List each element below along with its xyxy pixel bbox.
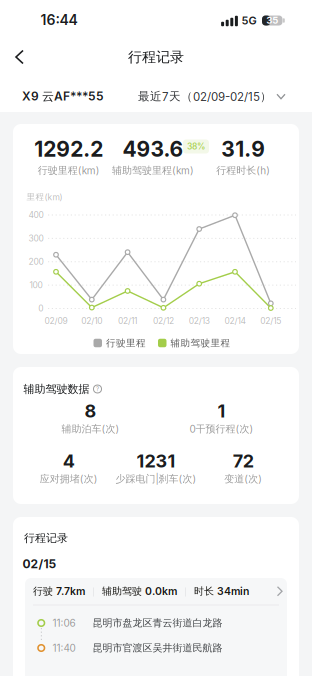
staticText: 02/10 xyxy=(81,316,102,326)
staticText: 72 xyxy=(233,450,254,472)
button[interactable]: 最近7天（02/09-02/15） xyxy=(138,89,285,103)
staticText: 0干预行程(次) xyxy=(189,423,253,435)
staticText: 少踩电门|刹车(次) xyxy=(115,473,196,485)
staticText: 400 xyxy=(28,210,43,220)
staticText: 0 xyxy=(38,303,43,313)
staticText: 昆明市官渡区吴井街道民航路 xyxy=(92,642,222,654)
staticText: 16:44 xyxy=(40,12,77,28)
staticText: 行程时长(h) xyxy=(216,164,270,177)
staticText: 最近7天（02/09-02/15） xyxy=(138,89,272,103)
staticText: 5G xyxy=(241,14,256,27)
staticText: 辅助驾驶 0.0km xyxy=(102,585,177,597)
staticText: 时长 34min xyxy=(194,585,249,597)
staticText: ｜ xyxy=(181,586,190,597)
staticText: 11:06 xyxy=(52,617,75,629)
staticText: 493.6 xyxy=(122,137,183,161)
staticText: 行驶里程(km) xyxy=(38,164,100,177)
staticText: 1292.2 xyxy=(34,137,103,161)
staticText: 31.9 xyxy=(221,137,265,161)
staticText: 应对拥堵(次) xyxy=(40,473,98,485)
staticText: ｜ xyxy=(89,586,98,597)
staticText: 02/12 xyxy=(153,316,174,326)
staticText: 行驶 7.7km xyxy=(33,585,85,597)
staticText: 02/15 xyxy=(260,316,281,326)
staticText: 4 xyxy=(63,450,75,472)
staticText: 1 xyxy=(217,400,225,422)
button[interactable]: 辅助驾驶数据说明 xyxy=(93,385,101,393)
staticText: 11:40 xyxy=(52,642,75,654)
staticText: 里程(km) xyxy=(26,192,62,202)
staticText: 行程记录 xyxy=(128,48,184,66)
staticText: 辅助驾驶数据 xyxy=(23,382,89,396)
button[interactable]: Back xyxy=(4,42,35,71)
staticText: X9 云AF***55 xyxy=(22,89,104,104)
staticText: 辅助驾驶里程 xyxy=(170,337,230,349)
staticText: 变道(次) xyxy=(224,473,262,485)
staticText: 200 xyxy=(28,257,43,267)
staticText: 昆明市盘龙区青云街道白龙路 xyxy=(92,617,222,629)
staticText: 300 xyxy=(28,233,43,243)
staticText: 02/14 xyxy=(224,316,245,326)
staticText: 1231 xyxy=(136,450,175,472)
button[interactable]: 行驶 7.7km xyxy=(25,578,287,604)
staticText: 8 xyxy=(84,400,96,422)
staticText: 行程记录 xyxy=(24,531,68,545)
staticText: 02/13 xyxy=(189,316,210,326)
staticText: 02/15 xyxy=(22,557,56,571)
staticText: 行驶里程 xyxy=(106,337,146,349)
staticText: 100 xyxy=(29,280,42,290)
staticText: 辅助泊车(次) xyxy=(61,423,119,435)
staticText: 38% xyxy=(187,141,205,151)
staticText: 02/11 xyxy=(118,316,137,326)
staticText: 辅助驾驶里程(km) xyxy=(112,164,194,177)
staticText: ? xyxy=(96,385,99,393)
staticText: 02/09 xyxy=(44,316,67,326)
staticText: 35 xyxy=(266,15,278,26)
